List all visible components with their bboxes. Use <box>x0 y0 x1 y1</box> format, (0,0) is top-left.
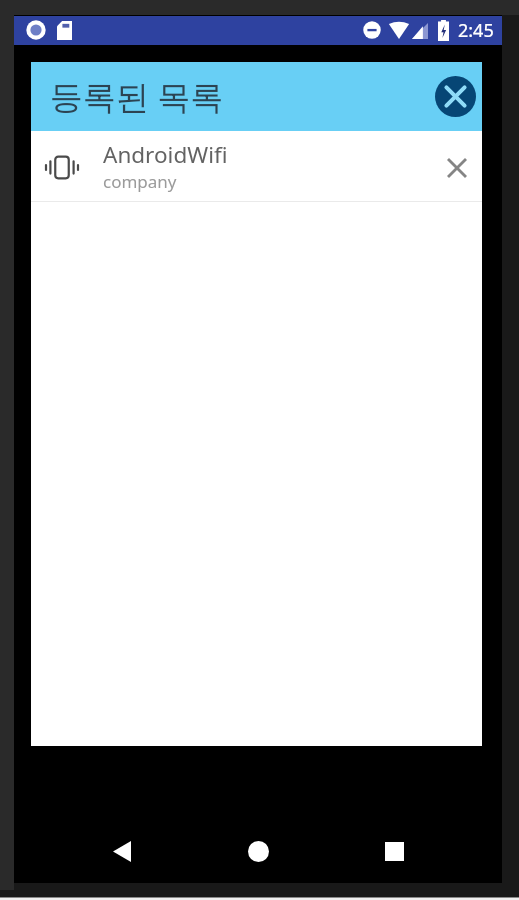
button[interactable]: AndroidWifi <box>31 131 482 202</box>
staticText: AndroidWifi <box>103 139 228 170</box>
button[interactable]: Recents <box>326 830 462 872</box>
button[interactable]: Close <box>435 76 476 117</box>
button[interactable]: Remove <box>432 131 482 201</box>
button[interactable]: Home <box>190 830 326 872</box>
staticText: 2:45 <box>458 18 494 43</box>
staticText: company <box>103 170 177 193</box>
button[interactable]: Back <box>54 830 190 872</box>
staticText: 등록된 목록 <box>50 74 224 119</box>
